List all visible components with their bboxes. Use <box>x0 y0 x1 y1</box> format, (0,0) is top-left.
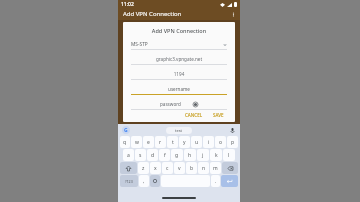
button[interactable]: Add VPN Connection <box>118 8 240 20</box>
staticText: password <box>160 101 181 107</box>
button[interactable]: r <box>155 136 166 148</box>
staticText: . <box>215 178 217 185</box>
staticText: Add VPN Connection <box>131 27 227 34</box>
staticText: g <box>175 152 179 159</box>
button[interactable]: m <box>210 162 221 174</box>
button[interactable]: d <box>147 149 158 161</box>
staticText: CANCEL <box>185 112 203 118</box>
staticText: 11:02 <box>121 1 134 8</box>
staticText: p <box>231 139 235 146</box>
button[interactable]: Enter <box>221 175 238 187</box>
button[interactable]: Google search <box>122 126 130 134</box>
staticText: 1194 <box>131 71 227 77</box>
button[interactable]: x <box>150 162 161 174</box>
button[interactable]: g <box>171 149 183 161</box>
button[interactable]: a <box>123 149 134 161</box>
button[interactable]: . <box>211 175 220 187</box>
button[interactable]: p <box>227 136 238 148</box>
staticText: d <box>151 152 155 159</box>
other: Show password <box>193 102 198 107</box>
button[interactable]: Backspace <box>222 162 238 174</box>
button[interactable]: s <box>135 149 146 161</box>
staticText: c <box>166 165 169 172</box>
staticText: w <box>135 139 139 146</box>
staticText: r <box>159 139 162 146</box>
staticText: j <box>202 152 204 159</box>
staticText: k <box>215 152 218 159</box>
staticText: f <box>164 152 166 159</box>
button[interactable]: username <box>131 86 227 95</box>
staticText: q <box>123 139 127 146</box>
staticText: z <box>142 165 145 172</box>
button[interactable]: n <box>198 162 209 174</box>
staticText: G <box>124 127 128 134</box>
button[interactable]: f <box>159 149 170 161</box>
staticText: SAVE <box>213 112 224 118</box>
button[interactable]: password <box>131 101 227 110</box>
button[interactable]: w <box>131 136 142 148</box>
staticText: MS-STP <box>131 41 148 48</box>
staticText: l <box>228 152 230 159</box>
staticText: v <box>178 165 181 172</box>
staticText: h <box>188 152 192 159</box>
staticText: u <box>195 139 199 146</box>
staticText: s <box>139 152 142 159</box>
staticText: o <box>219 139 223 146</box>
button[interactable]: 1194 <box>131 71 227 80</box>
button[interactable]: More options <box>230 11 236 17</box>
button[interactable]: u <box>191 136 202 148</box>
staticText: e <box>147 139 150 146</box>
button[interactable]: h <box>184 149 196 161</box>
staticText: n <box>202 165 206 172</box>
staticText: m <box>213 165 218 172</box>
button[interactable]: j <box>197 149 209 161</box>
button[interactable]: k <box>210 149 222 161</box>
button[interactable]: , <box>139 175 149 187</box>
button[interactable]: SAVE <box>210 111 227 119</box>
button[interactable]: CANCEL <box>182 111 206 119</box>
button[interactable]: l <box>223 149 235 161</box>
staticText: b <box>190 165 194 172</box>
staticText: , <box>143 178 145 185</box>
staticText: test <box>175 128 183 133</box>
staticText: graphic3.vpngate.net <box>131 56 227 62</box>
staticText: username <box>131 86 227 92</box>
button[interactable]: test <box>166 127 192 134</box>
button[interactable]: o <box>215 136 226 148</box>
staticText: i <box>208 139 210 146</box>
button[interactable]: b <box>186 162 197 174</box>
button[interactable]: MS-STP <box>131 40 227 49</box>
staticText: t <box>172 139 174 146</box>
button[interactable]: Shift <box>120 162 137 174</box>
button[interactable]: e <box>143 136 154 148</box>
button[interactable]: y <box>179 136 190 148</box>
staticText: ?123 <box>125 179 133 184</box>
staticText: x <box>154 165 157 172</box>
button[interactable]: i <box>203 136 214 148</box>
button[interactable]: t <box>167 136 178 148</box>
staticText: y <box>183 139 186 146</box>
button[interactable]: ?123 <box>120 175 138 187</box>
button[interactable]: graphic3.vpngate.net <box>131 56 227 65</box>
button[interactable]: q <box>120 136 130 148</box>
button[interactable]: Voice input <box>228 126 236 134</box>
button[interactable]: v <box>174 162 185 174</box>
button[interactable]: c <box>162 162 173 174</box>
staticText: a <box>127 152 130 159</box>
staticText: Add VPN Connection <box>123 10 182 18</box>
button[interactable]: z <box>138 162 149 174</box>
button[interactable]: Emoji <box>150 175 160 187</box>
